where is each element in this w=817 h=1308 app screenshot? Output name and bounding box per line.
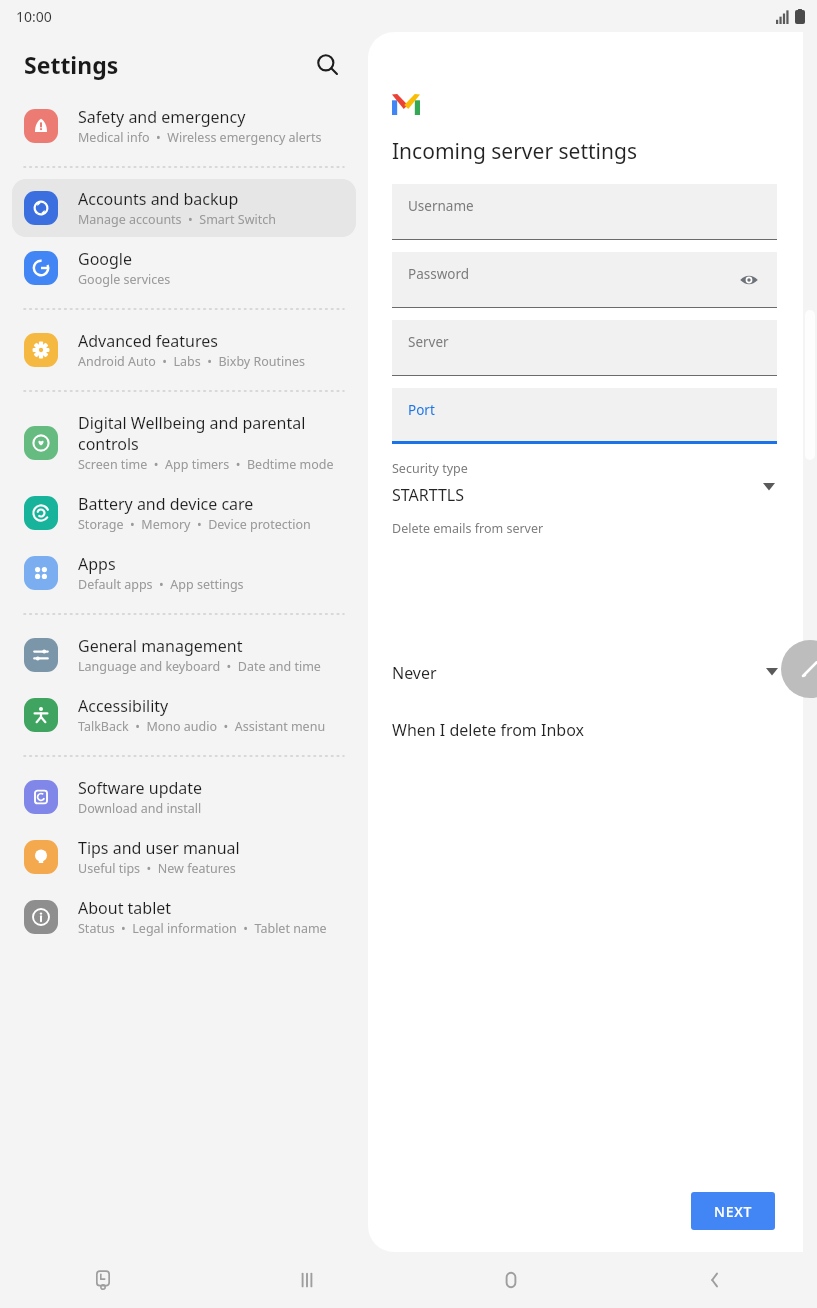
button[interactable]: Software update (12, 768, 356, 826)
staticText: Apps (78, 553, 116, 575)
button[interactable]: About tablet (12, 888, 356, 946)
staticText: Accounts and backup (78, 188, 239, 210)
button[interactable]: Accessibility (12, 686, 356, 744)
staticText: Screen time • App timers • Bedtime mode (78, 456, 334, 473)
staticText: Storage • Memory • Device protection (78, 516, 311, 533)
button[interactable]: Advanced features (12, 321, 356, 379)
button[interactable]: Username (392, 184, 777, 240)
button[interactable]: NEXT (691, 1192, 775, 1230)
staticText: Tips and user manual (78, 837, 240, 859)
staticText: Settings (24, 49, 119, 80)
staticText: Manage accounts • Smart Switch (78, 211, 276, 228)
button[interactable]: Keyboard toggle (0, 1252, 205, 1308)
button[interactable]: Search (306, 43, 348, 85)
staticText: About tablet (78, 897, 172, 919)
staticText: Advanced features (78, 330, 218, 352)
button[interactable]: Port (392, 388, 777, 444)
button[interactable]: Battery and device care (12, 484, 356, 542)
button[interactable]: Home (409, 1252, 613, 1308)
button[interactable]: Google (12, 239, 356, 297)
button[interactable]: Show password (735, 266, 763, 294)
button[interactable]: Apps (12, 544, 356, 602)
button[interactable]: Accounts and backup (12, 179, 356, 237)
button[interactable]: Server (392, 320, 777, 376)
staticText: NEXT (714, 1202, 753, 1221)
staticText: Safety and emergency (78, 106, 246, 128)
staticText: Username (408, 197, 474, 215)
staticText: Delete emails from server (392, 520, 544, 537)
staticText: Default apps • App settings (78, 576, 244, 593)
staticText: When I delete from Inbox (392, 719, 584, 741)
staticText: Battery and device care (78, 493, 254, 515)
staticText: Never (392, 662, 437, 684)
button[interactable]: Security type (392, 460, 777, 506)
staticText: Accessibility (78, 695, 169, 717)
button[interactable]: Never (384, 644, 748, 701)
staticText: 10:00 (16, 7, 52, 26)
staticText: Password (408, 265, 470, 283)
staticText: Android Auto • Labs • Bixby Routines (78, 353, 306, 370)
button[interactable]: Back (613, 1252, 817, 1308)
staticText: Google (78, 248, 133, 270)
staticText: Incoming server settings (392, 137, 637, 166)
staticText: Download and install (78, 800, 202, 817)
button[interactable]: Compose (781, 640, 817, 698)
staticText: TalkBack • Mono audio • Assistant menu (78, 718, 326, 735)
staticText: Useful tips • New features (78, 860, 236, 877)
button[interactable]: Recents (205, 1252, 409, 1308)
button[interactable]: Safety and emergency (12, 97, 356, 155)
staticText: Medical info • Wireless emergency alerts (78, 129, 322, 146)
staticText: Port (408, 401, 435, 419)
staticText: Status • Legal information • Tablet name (78, 920, 327, 937)
staticText: Language and keyboard • Date and time (78, 658, 321, 675)
button[interactable]: Password (392, 252, 777, 308)
button[interactable]: When I delete from Inbox (384, 701, 748, 758)
staticText: Software update (78, 777, 203, 799)
staticText: General management (78, 635, 243, 657)
staticText: Digital Wellbeing and parental controls (78, 412, 344, 455)
staticText: STARTTLS (392, 484, 465, 506)
staticText: Security type (392, 460, 468, 477)
staticText: Server (408, 333, 449, 351)
button[interactable]: Digital Wellbeing and parental controls (12, 403, 356, 482)
button[interactable]: General management (12, 626, 356, 684)
staticText: Google services (78, 271, 171, 288)
button[interactable]: Tips and user manual (12, 828, 356, 886)
